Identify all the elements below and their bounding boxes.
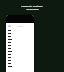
button[interactable] <box>6 53 34 56</box>
button[interactable] <box>6 47 34 50</box>
button[interactable] <box>6 56 34 59</box>
button[interactable] <box>6 32 34 35</box>
button[interactable] <box>8 25 11 27</box>
staticText: languages <box>26 7 39 10</box>
button[interactable] <box>6 38 34 41</box>
button[interactable] <box>6 41 34 44</box>
button[interactable] <box>6 59 34 62</box>
button[interactable] <box>6 29 34 32</box>
button[interactable] <box>6 65 34 68</box>
staticText: Supports multiple <box>21 4 43 7</box>
button[interactable] <box>6 35 34 38</box>
button[interactable] <box>6 50 34 53</box>
button[interactable] <box>6 44 34 47</box>
button[interactable] <box>6 62 34 65</box>
